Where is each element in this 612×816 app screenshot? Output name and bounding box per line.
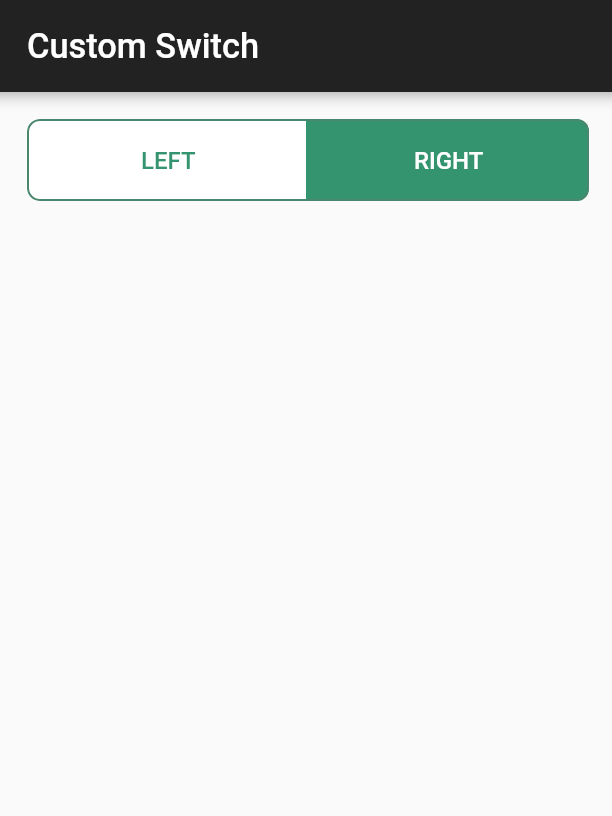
- staticText: RIGHT: [414, 147, 484, 175]
- button[interactable]: LEFT: [27, 119, 306, 201]
- staticText: LEFT: [141, 147, 196, 175]
- staticText: Custom Switch: [27, 26, 260, 66]
- button[interactable]: RIGHT: [306, 119, 589, 201]
